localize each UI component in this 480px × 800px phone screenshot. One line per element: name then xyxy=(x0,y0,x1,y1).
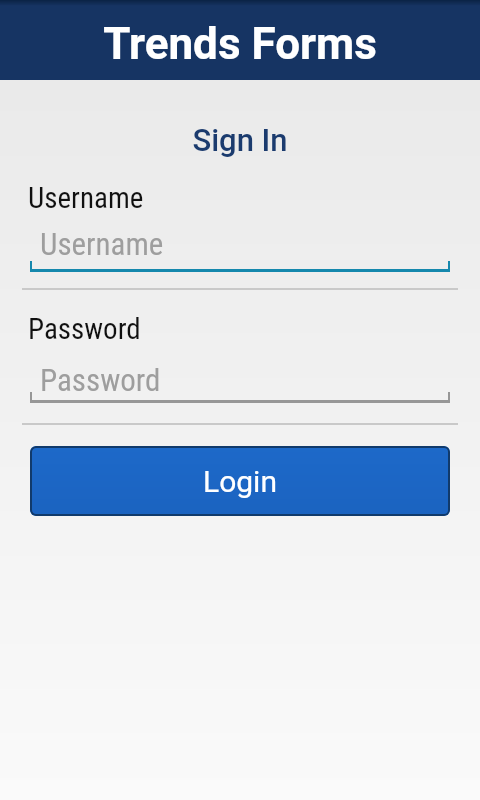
button[interactable]: Password xyxy=(30,354,450,403)
staticText: Password xyxy=(40,362,161,398)
staticText: Username xyxy=(40,226,164,262)
staticText: Login xyxy=(203,464,277,499)
staticText: Trends Forms xyxy=(0,18,480,70)
button[interactable]: Username xyxy=(30,220,450,272)
staticText: Username xyxy=(28,181,144,215)
staticText: Sign In xyxy=(0,122,480,158)
button[interactable]: Login xyxy=(30,446,450,516)
staticText: Password xyxy=(28,312,141,346)
